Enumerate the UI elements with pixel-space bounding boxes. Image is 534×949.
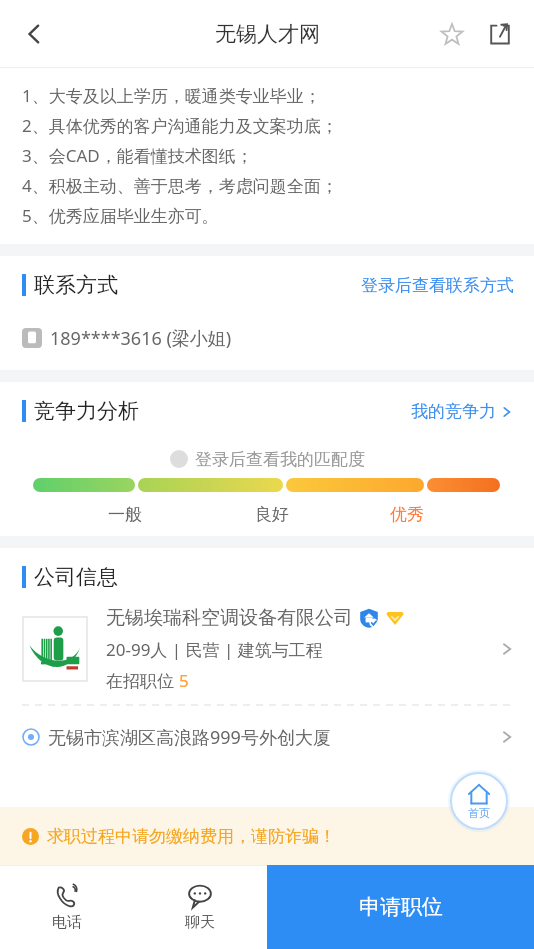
button[interactable]: 无锡埃瑞科空调设备有限公司: [0, 606, 534, 698]
button[interactable]: 189****3616 (梁小姐): [0, 314, 534, 362]
staticText: 4、积极主动、善于思考，考虑问题全面；: [22, 174, 338, 197]
staticText: 2、具体优秀的客户沟通能力及文案功底；: [22, 114, 338, 137]
staticText: 申请职位: [359, 894, 443, 920]
staticText: 无锡人才网: [215, 21, 320, 47]
staticText: 求职过程中请勿缴纳费用，谨防诈骗！: [47, 826, 336, 847]
button[interactable]: 无锡市滨湖区高浪路999号外创大厦: [0, 712, 534, 762]
staticText: 无锡市滨湖区高浪路999号外创大厦: [48, 725, 498, 750]
staticText: 我的竞争力: [411, 401, 496, 422]
staticText: 优秀: [390, 504, 424, 525]
staticText: 首页: [468, 806, 490, 820]
staticText: 联系方式: [34, 272, 118, 298]
staticText: 20-99人 | 民营 | 建筑与工程: [106, 638, 323, 661]
staticText: 登录后查看我的匹配度: [195, 449, 365, 470]
staticText: 5: [179, 669, 189, 692]
button[interactable]: 聊天: [133, 865, 267, 949]
staticText: 聊天: [185, 913, 215, 932]
staticText: 公司信息: [34, 564, 118, 590]
staticText: 登录后查看联系方式: [361, 275, 514, 296]
button[interactable]: 我的竞争力: [411, 401, 514, 422]
button[interactable]: 登录后查看联系方式: [361, 275, 514, 296]
button[interactable]: Favorite: [428, 10, 476, 58]
button[interactable]: Share: [476, 10, 524, 58]
staticText: 1、大专及以上学历，暖通类专业毕业；: [22, 84, 321, 107]
staticText: 电话: [52, 913, 82, 932]
staticText: 189****3616 (梁小姐): [50, 326, 232, 351]
staticText: 良好: [255, 504, 289, 525]
staticText: 在招职位: [106, 669, 179, 692]
button[interactable]: 电话: [0, 865, 133, 949]
staticText: 一般: [108, 504, 142, 525]
staticText: 5、优秀应届毕业生亦可。: [22, 204, 219, 227]
button[interactable]: 申请职位: [267, 865, 534, 949]
staticText: 无锡埃瑞科空调设备有限公司: [106, 606, 353, 630]
button[interactable]: Home: [448, 770, 510, 832]
staticText: 3、会CAD，能看懂技术图纸；: [22, 144, 253, 167]
staticText: 竞争力分析: [34, 398, 139, 424]
button[interactable]: Back: [8, 8, 60, 60]
